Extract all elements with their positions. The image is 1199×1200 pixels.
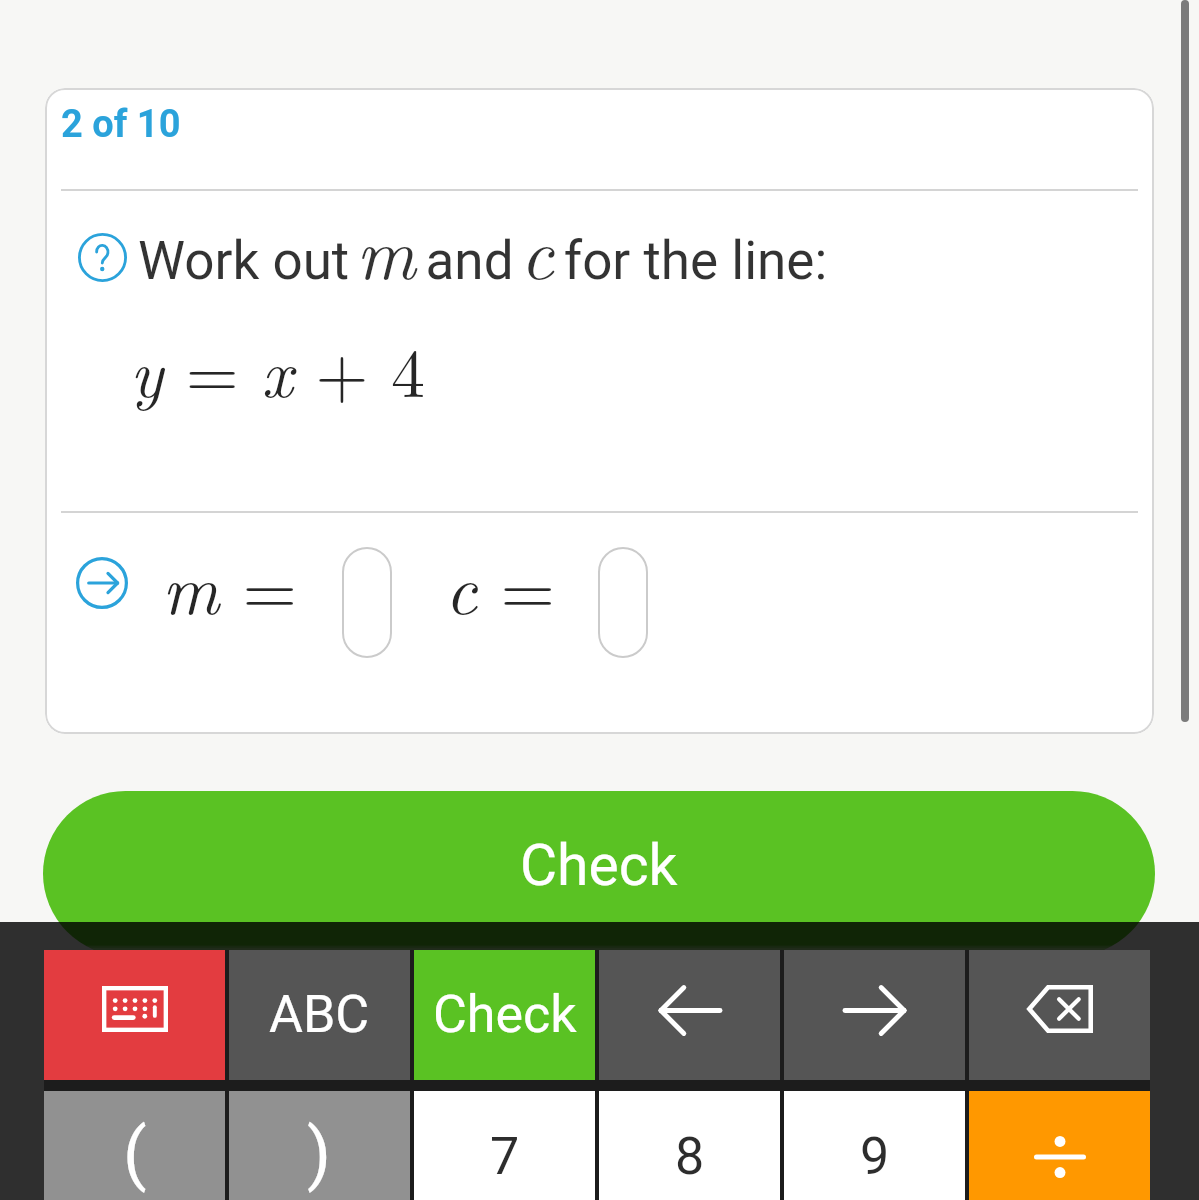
staticText: Check bbox=[433, 984, 577, 1045]
other: Hint bbox=[78, 233, 127, 282]
other: Enter answer bbox=[76, 557, 128, 609]
button[interactable]: 7 bbox=[414, 1091, 595, 1200]
staticText: ABC bbox=[269, 984, 370, 1045]
staticText: m = bbox=[162, 535, 298, 634]
button[interactable]: Hide keyboard bbox=[44, 950, 225, 1080]
button[interactable]: Answer box for c bbox=[598, 547, 648, 658]
button[interactable]: Show answer bbox=[76, 557, 128, 609]
button[interactable]: Check bbox=[414, 950, 595, 1080]
staticText: 2 of 10 bbox=[61, 102, 181, 147]
button[interactable]: Move right bbox=[784, 950, 965, 1080]
button[interactable]: ABC bbox=[229, 950, 410, 1080]
staticText: 8 bbox=[675, 1126, 705, 1187]
staticText: 9 bbox=[860, 1126, 890, 1187]
staticText: Check bbox=[520, 832, 678, 899]
button[interactable]: Move left bbox=[599, 950, 780, 1080]
staticText: y = x + 4 bbox=[130, 320, 425, 416]
button[interactable]: 8 bbox=[599, 1091, 780, 1200]
staticText: Work out m and c for the line: bbox=[138, 197, 828, 300]
button[interactable]: ) bbox=[229, 1091, 410, 1200]
button[interactable]: Divide bbox=[969, 1091, 1150, 1200]
staticText: ) bbox=[307, 1113, 332, 1194]
button[interactable]: Backspace bbox=[969, 950, 1150, 1080]
staticText: ( bbox=[123, 1113, 147, 1194]
staticText: c = bbox=[445, 535, 555, 634]
button[interactable]: ( bbox=[44, 1091, 225, 1200]
button[interactable]: Answer box for m bbox=[342, 547, 392, 658]
button[interactable]: Check bbox=[43, 791, 1155, 956]
staticText: 7 bbox=[490, 1126, 520, 1187]
button[interactable]: Show hint bbox=[78, 233, 127, 282]
button[interactable]: 9 bbox=[784, 1091, 965, 1200]
